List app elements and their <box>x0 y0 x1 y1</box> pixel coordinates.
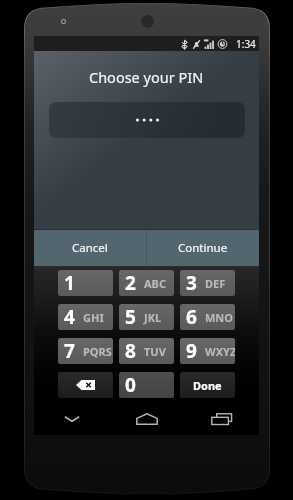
staticText: 7 <box>64 338 75 364</box>
staticText: 9 <box>186 338 197 364</box>
staticText: WXYZ <box>205 344 235 359</box>
button[interactable]: 0 <box>119 372 174 398</box>
staticText: 1 <box>64 270 75 296</box>
button[interactable]: 9 <box>180 338 235 364</box>
staticText: MNO <box>205 310 234 325</box>
staticText: TUV <box>144 344 166 359</box>
staticText: DEF <box>205 276 226 291</box>
button[interactable]: 7 <box>58 338 113 364</box>
button[interactable]: Back <box>34 403 109 434</box>
staticText: Cancel <box>72 240 108 256</box>
button[interactable]: 1 <box>58 270 113 296</box>
staticText: 8 <box>125 338 136 364</box>
staticText: 1:34 <box>236 37 256 51</box>
staticText: GHI <box>83 310 104 325</box>
button[interactable]: Continue <box>147 230 259 266</box>
button[interactable]: Backspace <box>58 372 113 398</box>
staticText: 6 <box>186 304 197 330</box>
button[interactable]: Home <box>109 403 184 434</box>
button[interactable]: 3 <box>180 270 235 296</box>
staticText: 2 <box>125 270 136 296</box>
staticText: Choose your PIN <box>89 67 204 87</box>
button[interactable]: Cancel <box>34 230 146 266</box>
staticText: 3 <box>186 270 197 296</box>
button[interactable]: Done <box>180 372 235 398</box>
staticText: 4 <box>64 304 75 330</box>
staticText: 0 <box>125 372 136 398</box>
button[interactable]: 2 <box>119 270 174 296</box>
staticText: Done <box>193 378 222 393</box>
button[interactable]: 4 <box>58 304 113 330</box>
button[interactable]: 6 <box>180 304 235 330</box>
staticText: ABC <box>144 276 166 291</box>
button[interactable]: Recents <box>184 403 259 434</box>
staticText: PQRS <box>83 344 112 359</box>
button[interactable]: 5 <box>119 304 174 330</box>
button[interactable]: 8 <box>119 338 174 364</box>
staticText: 5 <box>125 304 136 330</box>
button[interactable] <box>49 102 245 138</box>
staticText: Continue <box>178 240 228 256</box>
staticText: JKL <box>144 310 162 325</box>
